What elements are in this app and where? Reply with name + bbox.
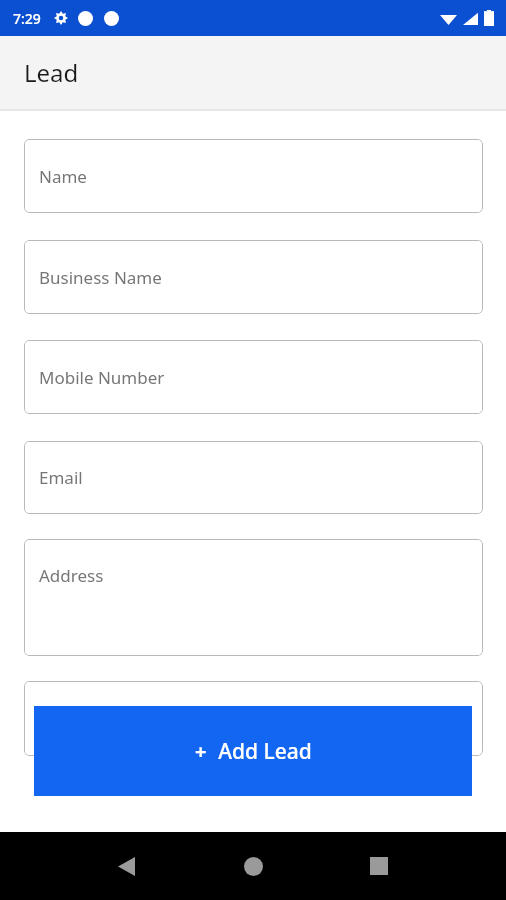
button[interactable]: Name [24,139,483,213]
button[interactable]: Email [24,441,483,514]
button[interactable]: Recent apps [360,847,398,885]
button[interactable]: Mobile Number [24,340,483,414]
button[interactable]: Address [24,539,483,656]
staticText: Email [39,466,83,489]
staticText: Name [39,165,87,188]
staticText: 7:29 [13,9,41,28]
staticText: Mobile Number [39,366,165,389]
staticText: Add Lead [218,737,312,766]
staticText: Address [39,564,104,587]
staticText: Business Name [39,266,162,289]
button[interactable]: Home [234,847,272,885]
button[interactable]: Business Name [24,240,483,314]
button[interactable]: + [34,706,472,796]
staticText: + [195,738,207,765]
button[interactable]: Back [107,847,145,885]
staticText: Lead [24,56,79,89]
button[interactable] [24,681,483,756]
